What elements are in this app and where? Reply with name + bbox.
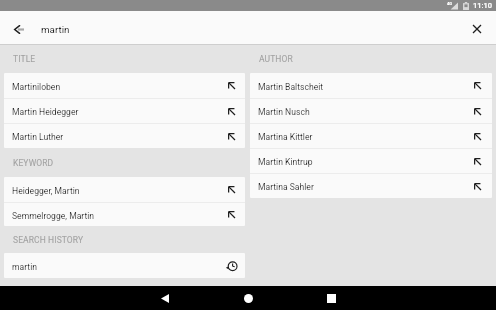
staticText: KEYWORD <box>13 158 54 168</box>
staticText: Martina Kittler <box>258 132 313 142</box>
button[interactable]: Martin Nusch <box>250 99 492 123</box>
button[interactable]: Clear search <box>461 14 493 44</box>
button[interactable]: Recent apps <box>311 286 351 310</box>
button[interactable]: Martin Heidegger <box>4 99 245 123</box>
staticText: TITLE <box>13 54 36 64</box>
button[interactable]: Martin Baltscheit <box>250 73 492 98</box>
staticText: Martin Heidegger <box>12 107 79 117</box>
staticText: 4G <box>447 1 453 6</box>
staticText: SEARCH HISTORY <box>13 235 84 245</box>
staticText: AUTHOR <box>259 54 293 64</box>
button[interactable]: Back <box>9 16 29 42</box>
staticText: Martin Baltscheit <box>258 82 324 92</box>
staticText: 11:10 <box>473 1 493 10</box>
staticText: martin <box>12 262 37 272</box>
staticText: martin <box>41 24 70 35</box>
staticText: Martiniloben <box>12 82 61 92</box>
button[interactable]: Home <box>228 286 268 310</box>
button[interactable]: martin <box>4 253 245 278</box>
staticText: Martin Kintrup <box>258 157 313 167</box>
staticText: Martin Nusch <box>258 107 310 117</box>
button[interactable]: Martina Sahler <box>250 174 492 198</box>
staticText: Martin Luther <box>12 132 64 142</box>
staticText: Martina Sahler <box>258 182 314 192</box>
staticText: Semmelrogge, Martin <box>12 211 95 221</box>
button[interactable]: Back <box>145 286 185 310</box>
staticText: Heidegger, Martin <box>12 186 80 196</box>
button[interactable]: Heidegger, Martin <box>4 177 245 202</box>
button[interactable]: Martina Kittler <box>250 124 492 148</box>
button[interactable]: Semmelrogge, Martin <box>4 203 245 226</box>
button[interactable]: Martin Luther <box>4 124 245 148</box>
button[interactable]: Martin Kintrup <box>250 149 492 173</box>
button[interactable]: Martiniloben <box>4 73 245 98</box>
